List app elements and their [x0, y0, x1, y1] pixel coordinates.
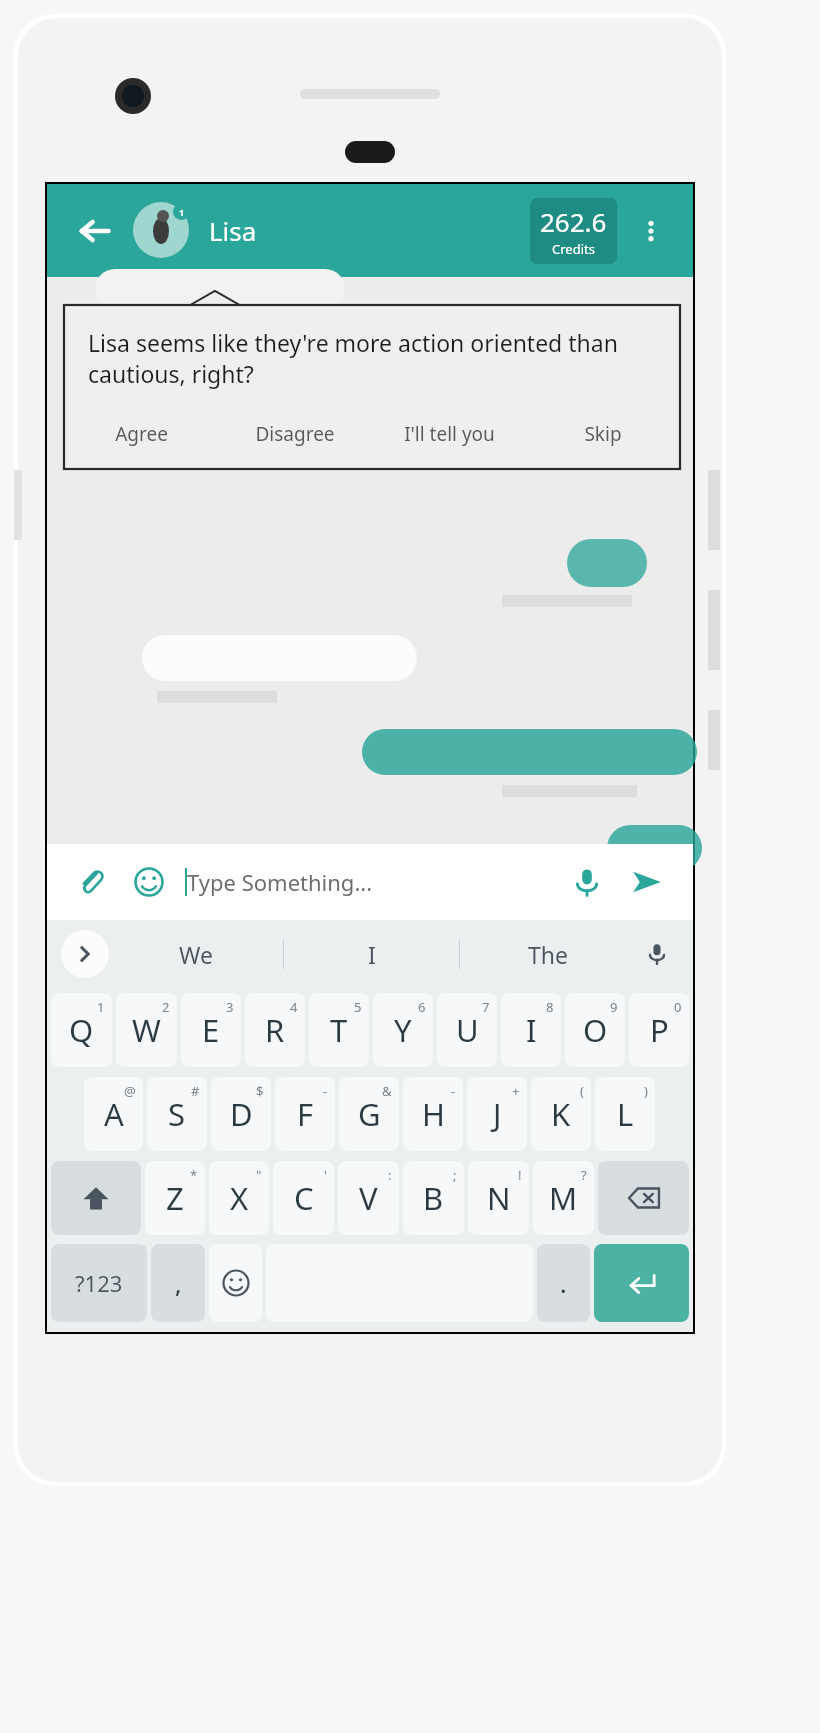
- button[interactable]: Profile photo: [133, 202, 191, 260]
- button[interactable]: Shift: [51, 1161, 141, 1235]
- staticText: X: [230, 1177, 249, 1219]
- button[interactable]: ,: [151, 1244, 205, 1322]
- staticText: 4: [290, 998, 298, 1016]
- staticText: I'll tell you: [404, 421, 495, 447]
- button[interactable]: More options: [631, 211, 671, 251]
- staticText: !: [518, 1166, 522, 1184]
- staticText: ?123: [75, 1268, 123, 1298]
- staticText: 7: [482, 998, 490, 1016]
- staticText: E: [202, 1009, 220, 1051]
- button[interactable]: X: [209, 1161, 269, 1235]
- button[interactable]: Voice input: [561, 856, 613, 908]
- button[interactable]: Expand toolbar: [61, 930, 109, 978]
- button[interactable]: P: [629, 993, 689, 1067]
- staticText: 1: [179, 206, 185, 218]
- staticText: H: [422, 1093, 445, 1135]
- staticText: Z: [166, 1177, 184, 1219]
- staticText: D: [230, 1093, 253, 1135]
- staticText: O: [583, 1009, 608, 1051]
- button[interactable]: S: [147, 1077, 207, 1151]
- button[interactable]: Emoji keyboard: [209, 1244, 262, 1322]
- staticText: 262.6: [540, 204, 607, 239]
- button[interactable]: G: [339, 1077, 399, 1151]
- staticText: 2: [162, 998, 170, 1016]
- staticText: The: [528, 939, 568, 970]
- button[interactable]: M: [533, 1161, 594, 1235]
- button[interactable]: Disagree: [218, 411, 372, 457]
- staticText: Y: [394, 1009, 412, 1051]
- staticText: J: [493, 1093, 502, 1135]
- button[interactable]: C: [273, 1161, 334, 1235]
- button[interactable]: T: [309, 993, 369, 1067]
- button[interactable]: A: [84, 1077, 143, 1151]
- staticText: C: [294, 1177, 314, 1219]
- staticText: I: [368, 939, 376, 970]
- staticText: 1: [97, 998, 105, 1016]
- button[interactable]: The: [460, 920, 635, 988]
- button[interactable]: Skip: [526, 411, 680, 457]
- button[interactable]: N: [468, 1161, 529, 1235]
- button[interactable]: We: [109, 920, 283, 988]
- button[interactable]: Attach file: [67, 858, 115, 906]
- staticText: U: [456, 1009, 479, 1051]
- button[interactable]: U: [437, 993, 497, 1067]
- staticText: &: [382, 1082, 392, 1100]
- button[interactable]: D: [211, 1077, 271, 1151]
- staticText: G: [358, 1093, 381, 1135]
- button[interactable]: Type Something...: [185, 867, 561, 897]
- button[interactable]: H: [403, 1077, 463, 1151]
- staticText: *: [190, 1166, 198, 1184]
- staticText: Lisa: [209, 213, 257, 248]
- button[interactable]: W: [116, 993, 177, 1067]
- button[interactable]: .: [537, 1244, 590, 1322]
- button[interactable]: F: [275, 1077, 335, 1151]
- staticText: ;: [453, 1166, 457, 1184]
- button[interactable]: Agree: [64, 411, 218, 457]
- button[interactable]: J: [467, 1077, 527, 1151]
- staticText: ?: [581, 1166, 587, 1184]
- button[interactable]: I: [284, 920, 459, 988]
- staticText: :: [388, 1166, 392, 1184]
- button[interactable]: V: [338, 1161, 399, 1235]
- button[interactable]: K: [531, 1077, 591, 1151]
- staticText: ,: [175, 1267, 182, 1300]
- staticText: #: [191, 1082, 200, 1100]
- button[interactable]: Voice typing: [635, 932, 679, 976]
- button[interactable]: Q: [51, 993, 112, 1067]
- button[interactable]: Enter: [594, 1244, 689, 1322]
- staticText: F: [297, 1093, 314, 1135]
- button[interactable]: Back: [69, 205, 121, 257]
- staticText: Type Something...: [187, 867, 373, 897]
- button[interactable]: I'll tell you: [372, 411, 526, 457]
- button[interactable]: I: [501, 993, 561, 1067]
- button[interactable]: B: [403, 1161, 464, 1235]
- staticText: R: [265, 1009, 285, 1051]
- button[interactable]: L: [595, 1077, 655, 1151]
- staticText: $: [256, 1082, 264, 1100]
- staticText: ): [644, 1082, 648, 1100]
- staticText: We: [179, 939, 213, 970]
- staticText: +: [512, 1082, 520, 1100]
- staticText: ': [324, 1166, 327, 1184]
- staticText: Agree: [115, 421, 168, 447]
- button[interactable]: O: [565, 993, 625, 1067]
- button[interactable]: Z: [145, 1161, 205, 1235]
- staticText: B: [423, 1177, 444, 1219]
- staticText: 8: [546, 998, 554, 1016]
- staticText: (: [580, 1082, 584, 1100]
- button[interactable]: Y: [373, 993, 433, 1067]
- button[interactable]: Send: [621, 856, 673, 908]
- button[interactable]: 262.6: [530, 198, 617, 264]
- staticText: .: [560, 1267, 567, 1300]
- staticText: ": [256, 1166, 262, 1184]
- button[interactable]: R: [245, 993, 305, 1067]
- button[interactable]: E: [181, 993, 241, 1067]
- staticText: Disagree: [255, 421, 335, 447]
- staticText: M: [549, 1177, 578, 1219]
- staticText: 5: [354, 998, 362, 1016]
- staticText: -: [323, 1082, 328, 1100]
- button[interactable]: ?123: [51, 1244, 147, 1322]
- button[interactable]: Backspace: [598, 1161, 689, 1235]
- button[interactable]: Emoji: [125, 858, 173, 906]
